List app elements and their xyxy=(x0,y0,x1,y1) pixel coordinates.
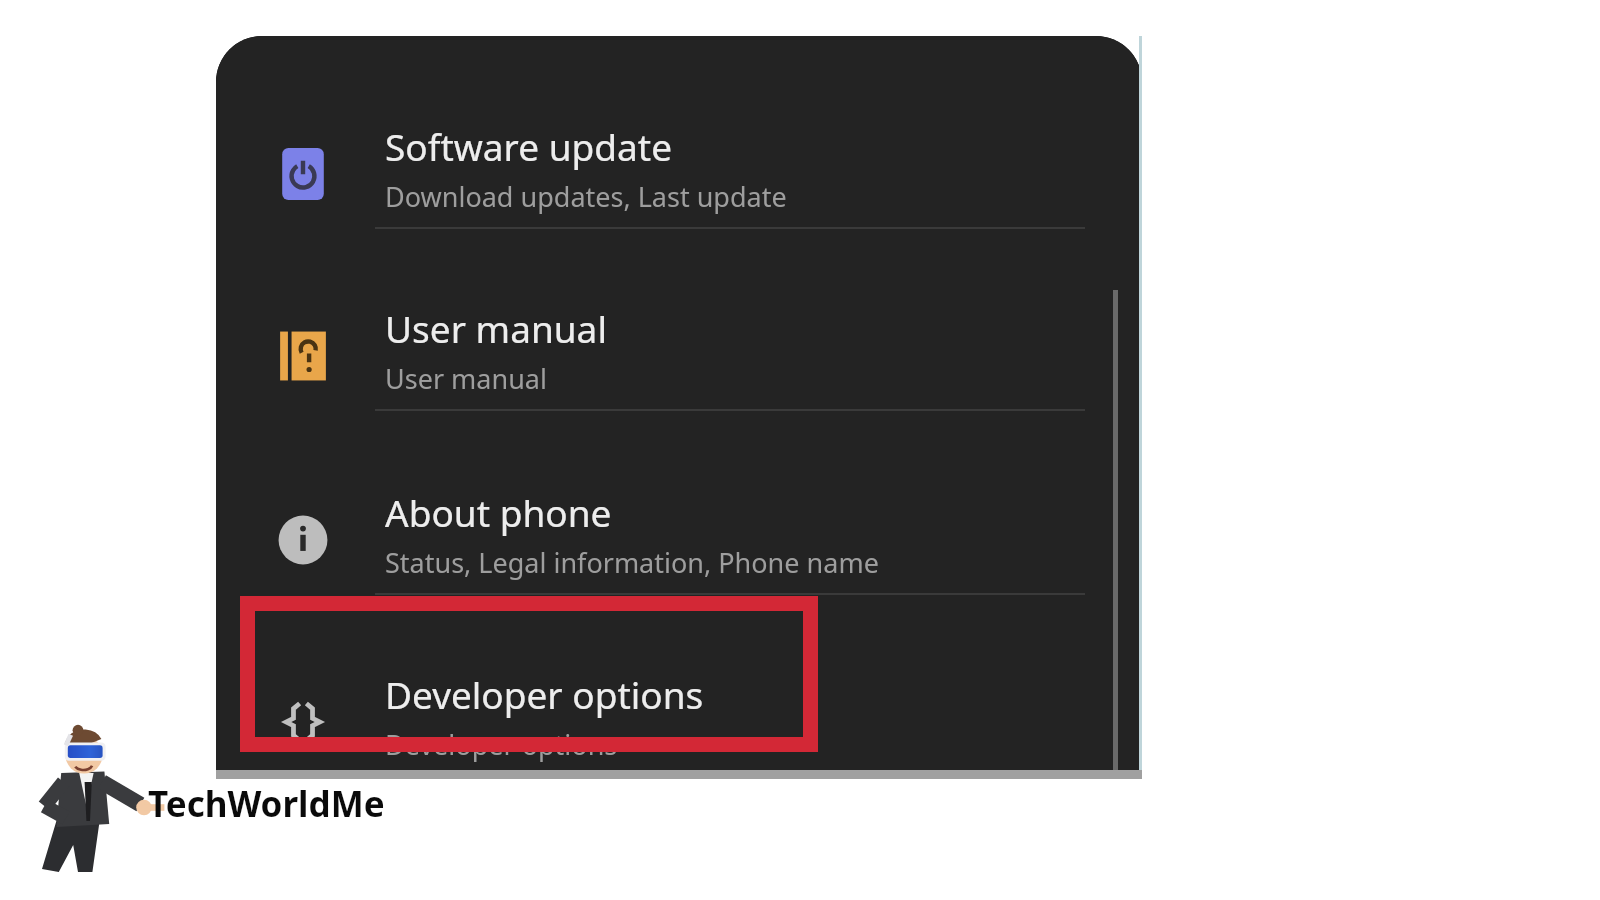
button[interactable] xyxy=(254,286,1116,426)
staticText: About phone xyxy=(385,487,612,537)
staticText: User manual xyxy=(385,303,607,353)
staticText: Status, Legal information, Phone name xyxy=(385,544,879,581)
button[interactable] xyxy=(254,104,1116,244)
staticText: Developer options xyxy=(385,726,618,763)
staticText: User manual xyxy=(385,360,547,397)
staticText: Download updates, Last update xyxy=(385,178,787,215)
button[interactable] xyxy=(254,470,1116,610)
staticText: TechWorldMe xyxy=(148,780,385,828)
staticText: Developer options xyxy=(385,669,704,719)
other: Highlighted: Developer options xyxy=(240,596,818,752)
button[interactable] xyxy=(254,652,1116,776)
staticText: Software update xyxy=(385,121,673,171)
